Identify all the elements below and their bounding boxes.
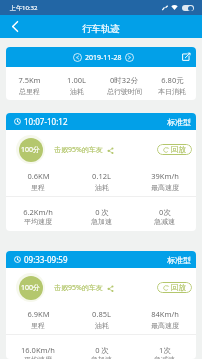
- staticText: 0.6KM: [27, 171, 50, 181]
- button[interactable]: Back: [0, 15, 30, 38]
- staticText: 急加速: [91, 355, 112, 359]
- staticText: 总里程: [19, 87, 40, 96]
- button[interactable]: Share: [106, 146, 115, 155]
- button[interactable]: 回放: [157, 144, 192, 155]
- staticText: 回放: [171, 145, 186, 154]
- staticText: 标准型: [167, 255, 191, 265]
- staticText: 急加速: [91, 217, 112, 226]
- staticText: 上午10:32: [10, 4, 38, 12]
- staticText: 6.9KM: [27, 309, 50, 319]
- staticText: 0次: [159, 207, 171, 217]
- staticText: 里程: [31, 321, 45, 330]
- button[interactable]: Next day: [123, 51, 136, 64]
- staticText: 16.0Km/h: [21, 345, 55, 355]
- staticText: 1.00L: [67, 75, 86, 85]
- staticText: 击败95%的车友: [54, 283, 103, 293]
- staticText: 7.5Km: [18, 75, 41, 85]
- button[interactable]: Edit: [179, 50, 193, 64]
- staticText: 油耗: [95, 321, 109, 330]
- staticText: 6.80元: [161, 75, 184, 85]
- staticText: 最高速度: [151, 183, 179, 192]
- staticText: 6.2Km/h: [23, 207, 53, 217]
- staticText: 0 次: [95, 207, 109, 217]
- staticText: 0.12L: [92, 171, 111, 181]
- staticText: 09:33-09:59: [24, 254, 68, 265]
- button[interactable]: Previous day: [71, 51, 84, 64]
- staticText: 100分: [21, 145, 41, 155]
- staticText: 2019-11-28: [85, 53, 122, 63]
- staticText: 急减速: [154, 355, 175, 359]
- staticText: 标准型: [167, 117, 191, 127]
- staticText: 平均速度: [24, 355, 52, 359]
- staticText: 急减速: [154, 217, 175, 226]
- staticText: 总行驶时间: [107, 87, 142, 96]
- staticText: 最高速度: [151, 321, 179, 330]
- staticText: 行车轨迹: [82, 23, 120, 35]
- staticText: 回放: [171, 283, 186, 292]
- staticText: 里程: [31, 183, 45, 192]
- button[interactable]: Share: [106, 284, 115, 293]
- staticText: 本日消耗: [158, 87, 186, 96]
- staticText: 油耗: [70, 87, 84, 96]
- staticText: 击败95%的车友: [54, 145, 103, 155]
- staticText: 0 次: [95, 345, 109, 355]
- staticText: 油耗: [95, 183, 109, 192]
- staticText: 100分: [21, 283, 41, 293]
- staticText: 84Km/h: [151, 309, 179, 319]
- staticText: 平均速度: [24, 217, 52, 226]
- staticText: 0时32分: [110, 75, 138, 85]
- staticText: 1次: [159, 345, 171, 355]
- staticText: 0.85L: [92, 309, 111, 319]
- staticText: 10:07-10:12: [24, 116, 68, 127]
- button[interactable]: 回放: [157, 282, 192, 293]
- staticText: 39Km/h: [151, 171, 179, 181]
